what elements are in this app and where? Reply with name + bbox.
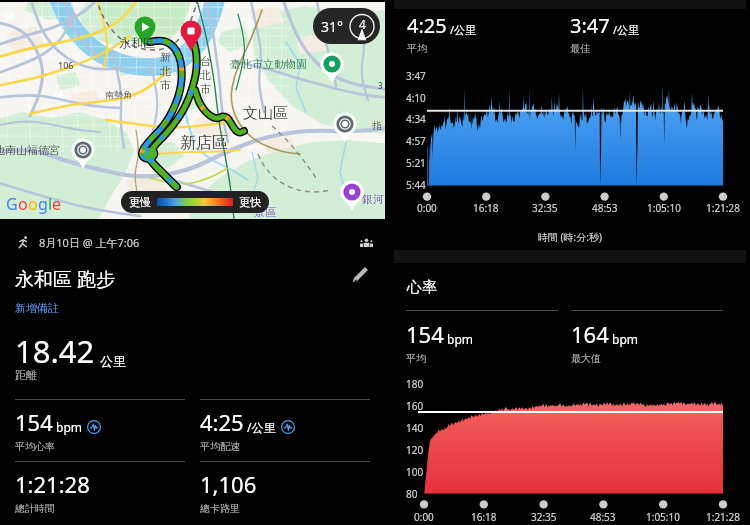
staticText: g <box>38 193 48 215</box>
staticText: 4:10 <box>406 91 426 105</box>
staticText: bpm <box>447 331 473 347</box>
staticText: 48:53 <box>592 201 618 215</box>
staticText: 平均心率 <box>15 440 55 453</box>
staticText: 最佳 <box>570 42 590 55</box>
button[interactable]: 新增備註 <box>15 301 59 315</box>
staticText: 地南山福德宮 <box>0 143 60 157</box>
other: Wind 4 <box>349 12 375 41</box>
staticText: 北 <box>200 68 211 82</box>
button[interactable]: 1:21:28 <box>15 461 185 519</box>
staticText: 1:21:28 <box>706 201 740 215</box>
staticText: 平均 <box>406 352 426 365</box>
staticText: 8月10日 @ 上午7:06 <box>39 235 140 250</box>
staticText: 市 <box>200 82 211 96</box>
staticText: 64 <box>4 11 14 22</box>
staticText: 時間 (時:分:秒) <box>390 230 750 244</box>
staticText: 最大值 <box>571 352 601 365</box>
staticText: 16:18 <box>471 510 497 524</box>
button[interactable]: 更慢 <box>129 191 261 213</box>
staticText: 154 <box>15 407 53 437</box>
staticText: 市 <box>160 78 171 92</box>
staticText: bpm <box>56 419 82 435</box>
staticText: o <box>28 193 38 215</box>
staticText: 1:21:28 <box>15 469 90 499</box>
staticText: 140 <box>406 421 424 435</box>
staticText: 32:35 <box>531 510 557 524</box>
staticText: bpm <box>612 331 638 347</box>
staticText: 164 <box>571 319 609 349</box>
staticText: 心率 <box>407 278 437 297</box>
staticText: 永和區 跑步 <box>15 266 115 292</box>
staticText: 1:21:28 <box>706 510 740 524</box>
staticText: 4:57 <box>406 134 426 148</box>
button[interactable]: 1,106 <box>200 461 370 519</box>
staticText: o <box>18 193 28 215</box>
staticText: 5:44 <box>406 178 426 192</box>
staticText: 1:05:10 <box>646 510 680 524</box>
button[interactable]: 154 <box>406 310 558 365</box>
staticText: 3 <box>378 80 383 91</box>
staticText: 更慢 <box>129 195 151 209</box>
staticText: 總計時間 <box>15 502 55 515</box>
button[interactable]: 164 <box>571 310 723 365</box>
staticText: 更快 <box>239 195 261 209</box>
staticText: 4 <box>359 16 366 32</box>
staticText: 3:47 <box>570 12 610 39</box>
button[interactable]: 31° <box>321 8 375 44</box>
staticText: 4:25 <box>200 407 244 437</box>
staticText: /公里 <box>613 22 640 37</box>
staticText: 31° <box>321 17 344 36</box>
staticText: /公里 <box>247 419 276 435</box>
staticText: G <box>6 193 18 215</box>
staticText: 5:21 <box>406 156 426 170</box>
staticText: 0:00 <box>414 510 434 524</box>
staticText: 0:00 <box>417 201 437 215</box>
staticText: 100 <box>406 465 424 479</box>
staticText: 南勢角 <box>105 89 132 100</box>
staticText: 120 <box>406 443 424 457</box>
button[interactable]: Edit <box>352 266 369 283</box>
staticText: e <box>52 193 61 215</box>
staticText: 64 <box>54 88 64 99</box>
staticText: 公里 <box>100 353 126 369</box>
staticText: 1,106 <box>200 469 257 499</box>
staticText: 銀河 <box>362 192 384 206</box>
button[interactable]: 154 <box>15 399 185 457</box>
staticText: 80 <box>406 487 418 501</box>
staticText: 新店區 <box>180 133 228 153</box>
staticText: 154 <box>406 319 444 349</box>
staticText: 平均 <box>407 42 427 55</box>
staticText: 新 <box>160 50 171 64</box>
staticText: 1:05:10 <box>647 201 681 215</box>
staticText: 32:35 <box>532 201 558 215</box>
staticText: 指 <box>372 119 382 132</box>
staticText: 160 <box>406 399 424 413</box>
staticText: 106 <box>58 59 74 71</box>
staticText: 平均配速 <box>200 440 240 453</box>
staticText: 臺北市立動物園 <box>230 57 307 71</box>
button[interactable]: Group activity <box>360 238 373 247</box>
button[interactable]: 4:25 <box>200 399 370 457</box>
button[interactable]: 4:25 <box>407 12 477 55</box>
staticText: 景區 <box>254 205 276 219</box>
staticText: 距離 <box>15 368 37 382</box>
staticText: 4:25 <box>407 12 447 39</box>
button[interactable]: 3:47 <box>570 12 640 55</box>
staticText: l <box>48 193 52 215</box>
staticText: 180 <box>406 377 424 391</box>
staticText: 永和區 <box>119 35 155 50</box>
staticText: 16:18 <box>473 201 499 215</box>
staticText: 3:47 <box>406 69 426 83</box>
staticText: 4:34 <box>406 112 426 126</box>
staticText: /公里 <box>450 22 477 37</box>
staticText: 台 <box>200 54 211 68</box>
staticText: 北 <box>160 64 171 78</box>
staticText: 文山區 <box>243 104 288 123</box>
staticText: 18.42 <box>15 330 95 372</box>
staticText: 總卡路里 <box>200 502 240 515</box>
staticText: 48:53 <box>590 510 616 524</box>
